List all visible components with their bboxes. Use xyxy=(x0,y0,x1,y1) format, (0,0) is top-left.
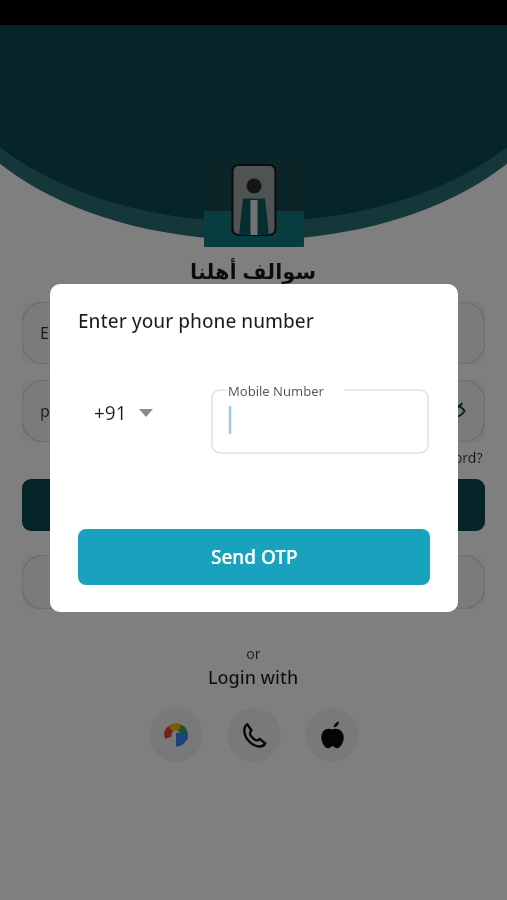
staticText: Mobile Number xyxy=(228,382,324,400)
staticText: or xyxy=(246,644,261,663)
button[interactable]: Sign Up xyxy=(22,555,485,609)
button[interactable]: Send OTP xyxy=(78,529,430,585)
button[interactable]: +91 xyxy=(88,392,159,434)
button[interactable]: Login xyxy=(22,479,485,531)
staticText: password xyxy=(40,400,113,422)
button[interactable]: Forgot Password? xyxy=(366,448,483,467)
button[interactable]: Enter Email xyxy=(22,302,485,364)
button[interactable]: Toggle password visibility xyxy=(439,396,469,426)
button[interactable]: Mobile Number xyxy=(212,373,428,453)
staticText: Enter your phone number xyxy=(78,308,314,334)
staticText: سوالف أهلنا xyxy=(190,257,317,286)
staticText: Send OTP xyxy=(211,544,298,570)
button[interactable]: Sign in with Apple xyxy=(305,708,359,762)
staticText: Login with xyxy=(208,665,299,690)
staticText: Enter Email xyxy=(40,322,126,344)
staticText: Sign Up xyxy=(222,571,285,594)
button[interactable]: password xyxy=(22,380,485,442)
button[interactable]: Sign in with Google xyxy=(149,708,203,762)
button[interactable]: Sign in with phone number xyxy=(227,708,281,762)
staticText: +91 xyxy=(94,400,127,426)
